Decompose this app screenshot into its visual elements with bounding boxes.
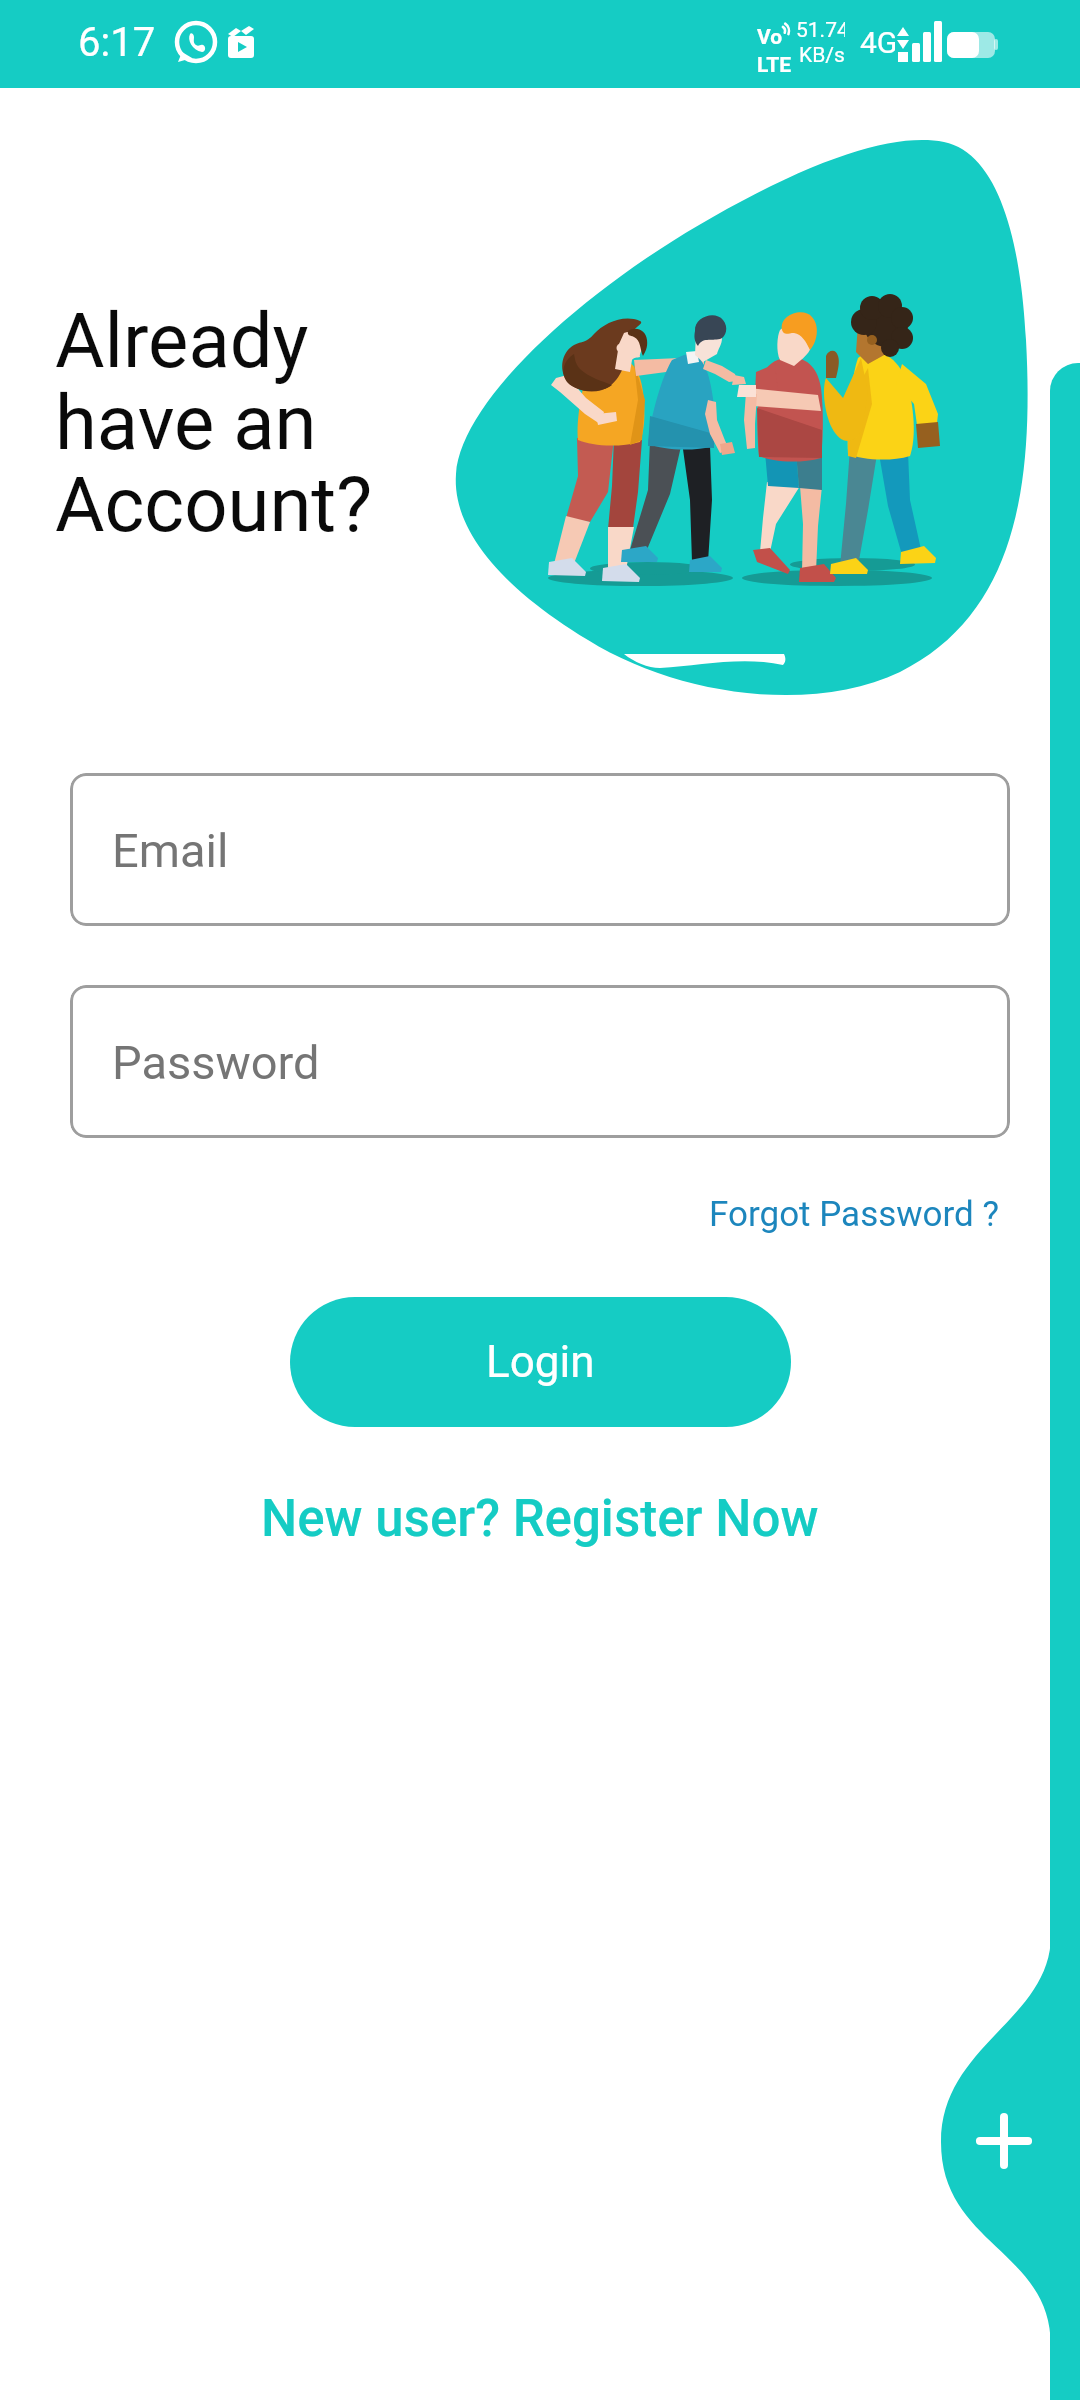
staticText: New user? Register Now	[261, 1489, 819, 1549]
button[interactable]: New user? Register Now	[261, 1489, 819, 1549]
button[interactable]: Login	[290, 1297, 791, 1427]
staticText: Forgot Password ?	[709, 1194, 1000, 1235]
staticText: Password	[112, 1035, 320, 1090]
staticText: Login	[486, 1336, 595, 1388]
staticText: 51.74	[796, 18, 845, 43]
button[interactable]: Forgot Password ?	[709, 1194, 1000, 1235]
button[interactable]: Add	[944, 2081, 1064, 2201]
button[interactable]: Password	[70, 985, 1010, 1138]
staticText: KB/s	[799, 43, 845, 68]
button[interactable]: Email	[70, 773, 1010, 926]
staticText: LTE	[757, 53, 792, 78]
staticText: 6:17	[78, 19, 156, 66]
staticText: Email	[112, 823, 229, 878]
staticText: 4G	[860, 25, 898, 60]
staticText: Vo	[757, 25, 783, 50]
staticText: Already have an Account?	[55, 296, 373, 549]
